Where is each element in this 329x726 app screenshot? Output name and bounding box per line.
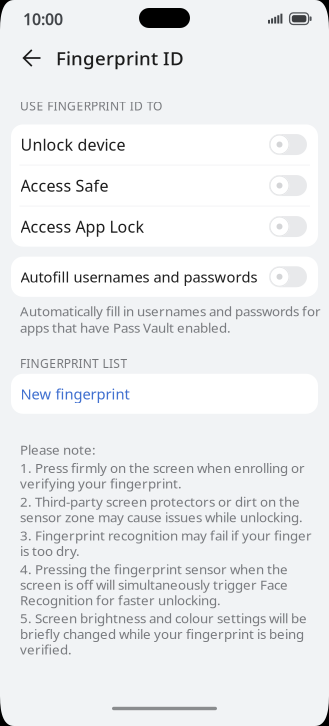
staticText: 4. Pressing the fingerprint sensor when … [20,560,288,609]
staticText: 5. Screen brightness and colour settings… [20,609,307,658]
button[interactable]: Access App Lock [11,206,318,247]
staticText: 1. Press firmly on the screen when enrol… [20,459,305,492]
button[interactable]: Autofill usernames and passwords [11,257,318,297]
button[interactable]: New fingerprint [11,374,318,414]
staticText: USE FINGERPRINT ID TO [20,98,162,114]
staticText: New fingerprint [20,384,129,403]
button[interactable]: Unlock device [11,124,318,165]
staticText: FINGERPRINT LIST [20,355,127,371]
staticText: 10:00 [23,8,63,30]
button[interactable]: Access Safe [11,165,318,206]
staticText: Fingerprint ID [56,46,184,70]
staticText: Access Safe [20,175,108,196]
button[interactable] [0,49,41,66]
staticText: Unlock device [20,134,125,155]
staticText: 2. Third-party screen protectors or dirt… [20,493,303,526]
staticText: Automatically fill in usernames and pass… [20,302,321,336]
staticText: Access App Lock [20,216,144,237]
staticText: Autofill usernames and passwords [20,267,257,286]
staticText: Please note: [20,441,96,458]
staticText: 3. Fingerprint recognition may fail if y… [20,526,312,560]
